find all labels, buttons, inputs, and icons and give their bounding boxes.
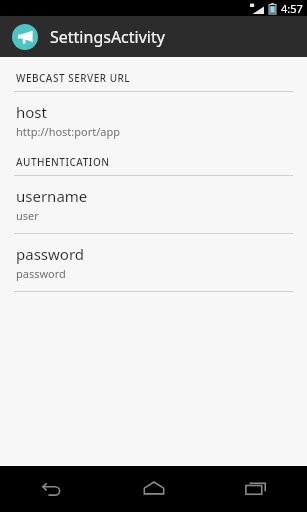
staticText: SettingsActivity — [50, 26, 165, 48]
staticText: http://host:port/app — [16, 124, 121, 139]
staticText: 4:57 — [281, 1, 303, 16]
staticText: username — [16, 186, 88, 206]
staticText: WEBCAST SERVER URL — [16, 71, 131, 85]
button[interactable]: host — [0, 92, 307, 149]
staticText: AUTHENTICATION — [16, 155, 110, 169]
staticText: password — [16, 266, 66, 281]
staticText: password — [16, 244, 84, 264]
button[interactable]: password — [0, 234, 307, 291]
button[interactable]: Home — [103, 466, 205, 512]
button[interactable]: username — [0, 176, 307, 233]
staticText: user — [16, 208, 39, 223]
button[interactable]: Back — [0, 466, 103, 512]
staticText: host — [16, 102, 47, 122]
button[interactable]: Recent apps — [205, 466, 307, 512]
